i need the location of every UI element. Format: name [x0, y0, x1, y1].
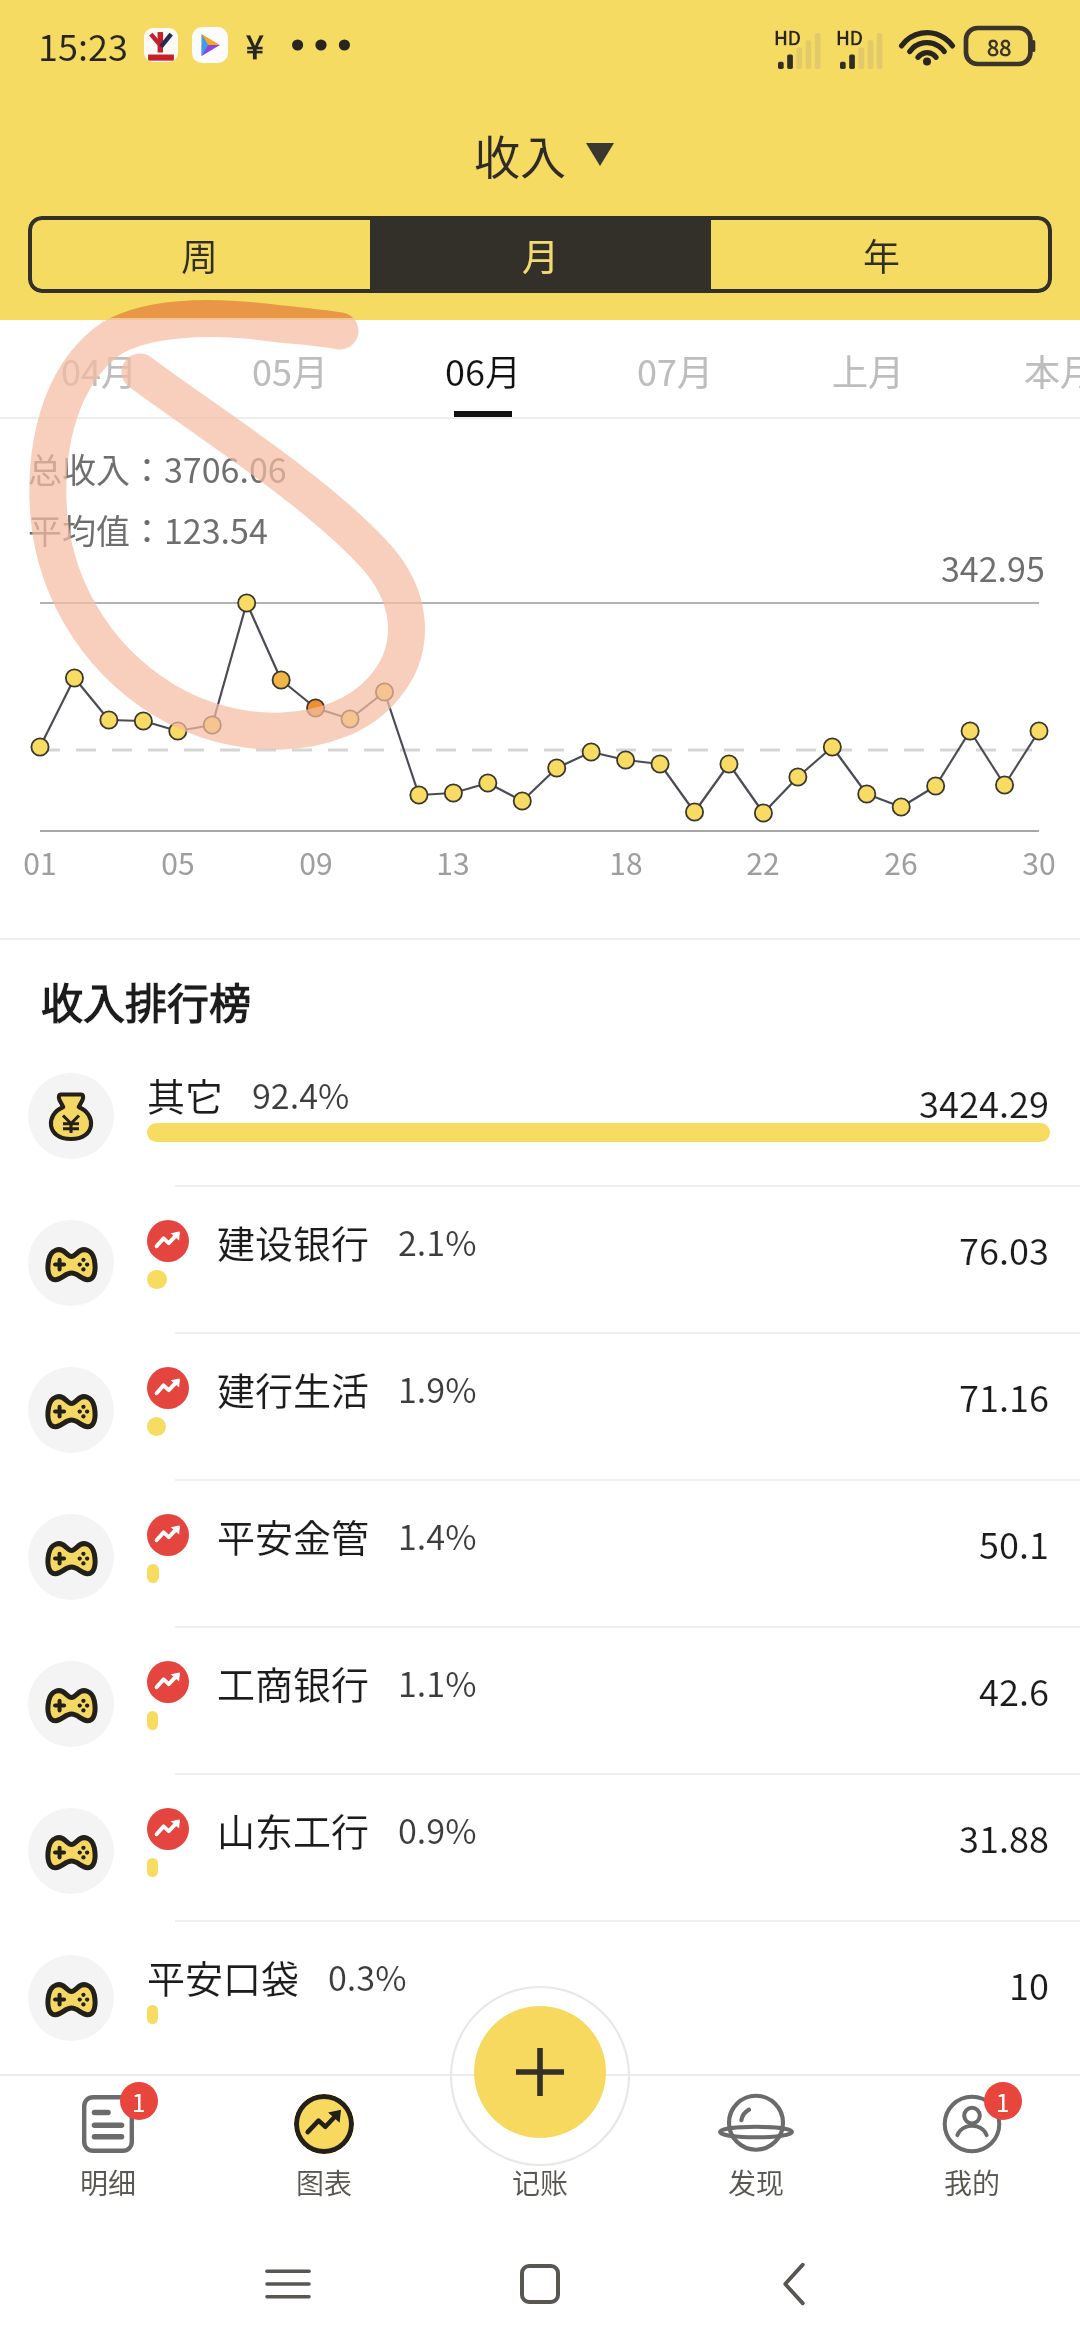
button[interactable]: 04月 [1, 322, 193, 418]
staticText: 山东工行 [217, 1802, 370, 1857]
staticText: 15:23 [38, 19, 128, 71]
button[interactable]: 平安口袋 [0, 1922, 1080, 2069]
staticText: 13 [436, 840, 470, 883]
staticText: 明细 [80, 2162, 137, 2203]
button[interactable]: 其它 [0, 1040, 1080, 1187]
staticText: 04月 [61, 344, 137, 396]
button[interactable]: 06月 [385, 322, 577, 418]
button[interactable]: 上月 [770, 322, 962, 418]
staticText: 图表 [296, 2162, 353, 2203]
staticText: 09 [299, 840, 333, 883]
staticText: 1.4% [398, 1511, 477, 1560]
staticText: 3424.29 [919, 1076, 1049, 1128]
staticText: 342.95 [941, 543, 1045, 592]
staticText: 92.4% [252, 1070, 350, 1119]
staticText: 建设银行 [217, 1214, 370, 1269]
staticText: 记账 [512, 2162, 569, 2203]
staticText: 88 [987, 30, 1012, 62]
staticText: 05月 [252, 344, 328, 396]
staticText: 50.1 [979, 1517, 1049, 1569]
staticText: 07月 [637, 344, 713, 396]
staticText: 22 [746, 840, 780, 883]
button[interactable]: Home [490, 2256, 590, 2312]
other: Home [520, 2264, 560, 2304]
staticText: 收入 [474, 121, 566, 188]
button[interactable]: 月 [370, 216, 711, 293]
staticText: 30 [1022, 840, 1056, 883]
button[interactable]: 1 [864, 2076, 1080, 2224]
staticText: 工商银行 [217, 1655, 370, 1710]
staticText: 26 [884, 840, 918, 883]
staticText: 76.03 [959, 1223, 1049, 1275]
staticText: 建行生活 [217, 1361, 370, 1416]
staticText: 1 [996, 2084, 1010, 2119]
staticText: 1.1% [398, 1658, 477, 1707]
button[interactable]: 05月 [192, 322, 384, 418]
staticText: 42.6 [979, 1664, 1049, 1716]
staticText: HD [774, 23, 801, 51]
staticText: 2.1% [398, 1217, 477, 1266]
staticText: 18 [609, 840, 643, 883]
button[interactable]: 工商银行 [0, 1628, 1080, 1775]
button[interactable]: 发现 [648, 2076, 864, 2224]
button[interactable]: 07月 [577, 322, 769, 418]
button[interactable]: Recent apps [238, 2256, 338, 2312]
staticText: 上月 [832, 344, 905, 396]
button[interactable]: 年 [711, 216, 1052, 293]
staticText: 其它 [147, 1067, 224, 1122]
staticText: 我的 [944, 2162, 1001, 2203]
staticText: 周 [181, 228, 218, 282]
staticText: 收入排行榜 [41, 970, 252, 1031]
staticText: 年 [863, 228, 900, 282]
staticText: 平安口袋 [147, 1949, 300, 2004]
staticText: 0.3% [328, 1952, 407, 2001]
staticText: 月 [522, 228, 559, 282]
staticText: 发现 [728, 2162, 785, 2203]
staticText: 05 [161, 840, 195, 883]
staticText: 平均值：123.54 [28, 505, 268, 554]
other: Recent apps [267, 2268, 309, 2300]
button[interactable]: 图表 [216, 2076, 432, 2224]
staticText: 31.88 [959, 1811, 1049, 1863]
button[interactable]: 记账 [432, 2076, 648, 2224]
staticText: 1.9% [398, 1364, 477, 1413]
button[interactable]: 平安金管 [0, 1481, 1080, 1628]
button[interactable]: Add record [474, 2006, 606, 2138]
other: Back [781, 2262, 807, 2306]
button[interactable]: 本月 [962, 322, 1080, 418]
staticText: HD [836, 23, 863, 51]
staticText: 71.16 [959, 1370, 1049, 1422]
button[interactable]: 建行生活 [0, 1334, 1080, 1481]
staticText: ¥ [246, 22, 264, 68]
button[interactable]: 山东工行 [0, 1775, 1080, 1922]
staticText: 10 [1009, 1958, 1049, 2010]
staticText: 本月 [1024, 344, 1080, 396]
button[interactable]: 建设银行 [0, 1187, 1080, 1334]
staticText: 1 [132, 2084, 146, 2119]
staticText: 平安金管 [217, 1508, 370, 1563]
staticText: 06月 [445, 344, 521, 396]
staticText: 01 [23, 840, 57, 883]
button[interactable]: Back [744, 2256, 844, 2312]
button[interactable]: 周 [28, 216, 370, 293]
staticText: 0.9% [398, 1805, 477, 1854]
staticText: 总收入：3706.06 [28, 444, 287, 493]
button[interactable]: 1 [0, 2076, 216, 2224]
